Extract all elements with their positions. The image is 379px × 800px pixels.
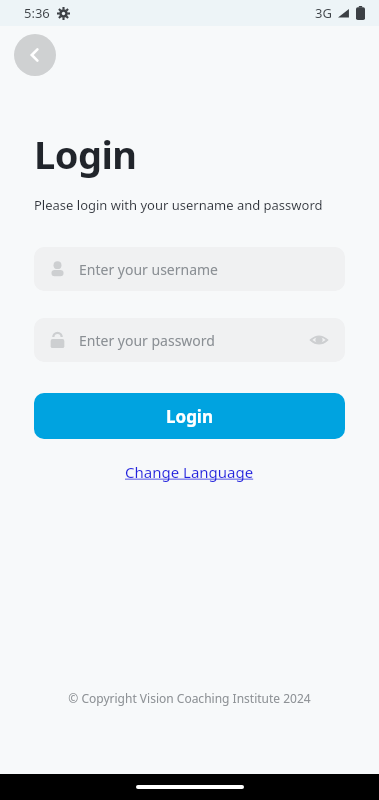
staticText: Change Language <box>125 462 254 482</box>
staticText: Login <box>166 405 214 428</box>
button[interactable]: Show password <box>307 328 331 352</box>
staticText: Enter your username <box>79 260 331 279</box>
button[interactable]: Change Language <box>119 459 260 485</box>
button[interactable]: Login <box>34 393 345 439</box>
staticText: Login <box>34 128 137 180</box>
staticText: © Copyright Vision Coaching Institute 20… <box>68 690 311 706</box>
button[interactable]: Enter your password <box>34 318 345 362</box>
staticText: Enter your password <box>79 331 307 350</box>
button[interactable]: Back <box>14 34 56 76</box>
staticText: 3G <box>315 4 332 22</box>
staticText: Please login with your username and pass… <box>34 196 323 214</box>
staticText: 5:36 <box>24 4 50 22</box>
button[interactable]: Enter your username <box>34 247 345 291</box>
